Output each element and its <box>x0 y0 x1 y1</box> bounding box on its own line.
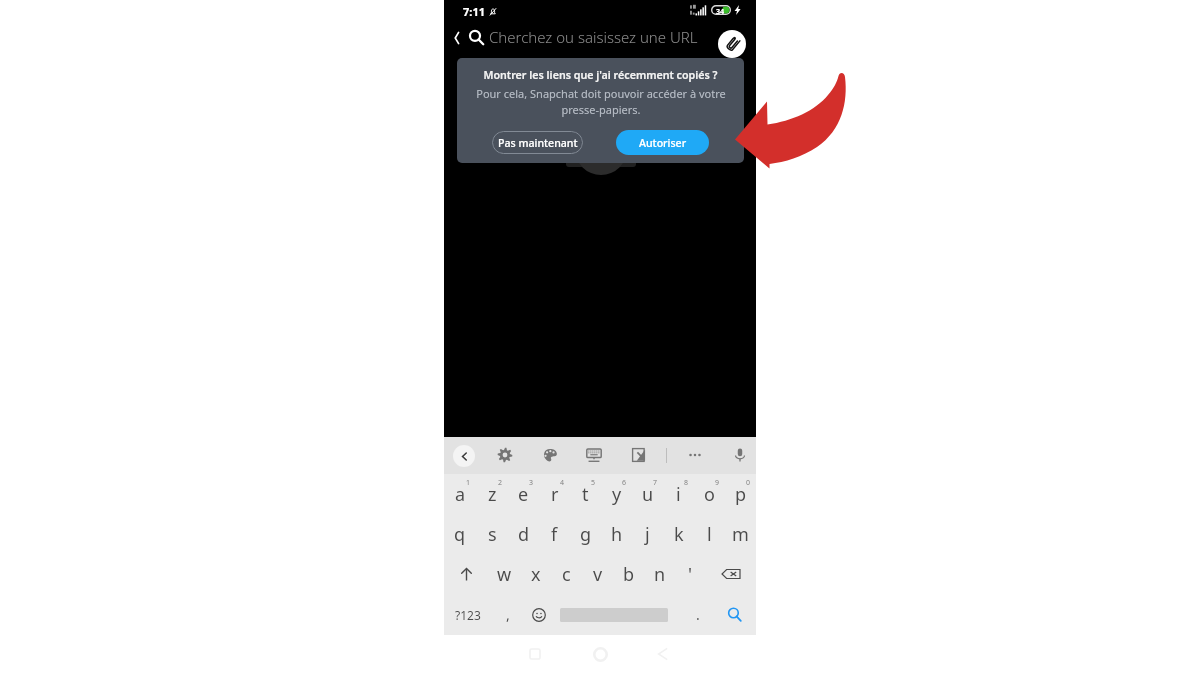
staticText: w <box>497 562 512 587</box>
button[interactable]: Theme <box>539 444 561 466</box>
staticText: 34 <box>716 6 725 16</box>
staticText: Pas maintenant <box>498 136 578 150</box>
staticText: f <box>551 522 558 547</box>
button[interactable]: l <box>694 514 725 554</box>
button[interactable]: k <box>663 514 694 554</box>
button[interactable]: Attach <box>718 30 746 58</box>
button[interactable]: j <box>632 514 663 554</box>
staticText: s <box>488 522 497 547</box>
button[interactable]: a <box>444 474 476 514</box>
staticText: Autoriser <box>639 136 687 150</box>
staticText: l <box>707 522 712 547</box>
button[interactable]: Keyboard <box>583 444 605 466</box>
staticText: a <box>455 482 466 507</box>
button[interactable]: q <box>444 514 476 554</box>
staticText: o <box>704 482 715 507</box>
button[interactable]: h <box>601 514 632 554</box>
button[interactable]: v <box>582 554 613 594</box>
button[interactable]: n <box>644 554 675 594</box>
staticText: 2 <box>498 478 503 488</box>
staticText: 1 <box>466 478 471 488</box>
button[interactable]: , <box>492 594 523 635</box>
button[interactable]: Back <box>453 445 475 467</box>
staticText: y <box>612 482 622 507</box>
button[interactable]: Backspace <box>706 554 756 594</box>
button[interactable]: e <box>508 474 539 514</box>
button[interactable]: Emoji <box>523 594 554 635</box>
button[interactable]: i <box>663 474 694 514</box>
button[interactable]: o <box>694 474 725 514</box>
button[interactable]: c <box>551 554 582 594</box>
staticText: z <box>488 482 497 507</box>
button[interactable]: Home <box>588 642 612 666</box>
button[interactable]: Recents <box>523 642 547 666</box>
button[interactable]: d <box>508 514 539 554</box>
staticText: i <box>676 482 681 507</box>
staticText: q <box>454 522 466 547</box>
button[interactable]: Autoriser <box>616 130 709 155</box>
button[interactable]: Voice <box>729 444 751 466</box>
staticText: m <box>732 522 749 547</box>
staticText: 9 <box>715 478 720 488</box>
staticText: 6 <box>622 478 627 488</box>
staticText: ?123 <box>455 607 481 623</box>
staticText: 0 <box>746 478 751 488</box>
button[interactable]: t <box>570 474 601 514</box>
staticText: Pour cela, Snapchat doit pouvoir accéder… <box>475 86 727 117</box>
button[interactable]: r <box>539 474 570 514</box>
staticText: 3 <box>529 478 534 488</box>
button[interactable]: Search <box>466 27 486 47</box>
button[interactable]: u <box>632 474 663 514</box>
staticText: r <box>551 482 559 507</box>
button[interactable]: Search <box>713 594 756 635</box>
staticText: 7:11 <box>463 4 485 19</box>
button[interactable]: m <box>725 514 756 554</box>
staticText: 8 <box>684 478 689 488</box>
button[interactable]: s <box>476 514 508 554</box>
staticText: h <box>611 522 623 547</box>
button[interactable]: b <box>613 554 644 594</box>
staticText: e <box>518 482 529 507</box>
button[interactable]: p <box>725 474 756 514</box>
staticText: u <box>642 482 654 507</box>
button[interactable]: Shift <box>444 554 489 594</box>
staticText: c <box>562 562 571 587</box>
staticText: g <box>580 522 592 547</box>
button[interactable]: z <box>476 474 508 514</box>
staticText: p <box>735 482 747 507</box>
button[interactable]: ' <box>675 554 706 594</box>
staticText: . <box>696 605 700 624</box>
staticText: t <box>582 482 589 507</box>
staticText: x <box>531 562 541 587</box>
staticText: j <box>645 522 650 547</box>
staticText: , <box>506 605 510 624</box>
button[interactable]: f <box>539 514 570 554</box>
staticText: b <box>623 562 635 587</box>
button[interactable]: Back <box>447 28 467 48</box>
button[interactable]: g <box>570 514 601 554</box>
button[interactable]: More <box>684 444 706 466</box>
button[interactable]: Pas maintenant <box>492 131 583 154</box>
staticText: k <box>674 522 684 547</box>
staticText: d <box>518 522 530 547</box>
staticText: 7 <box>653 478 658 488</box>
button[interactable]: Resize <box>628 444 650 466</box>
button[interactable]: w <box>489 554 520 594</box>
button[interactable]: ?123 <box>444 594 492 635</box>
staticText: 5 <box>591 478 596 488</box>
button[interactable]: y <box>601 474 632 514</box>
staticText: Montrer les liens que j'ai récemment cop… <box>483 68 718 83</box>
staticText: Cherchez ou saisissez une URL <box>489 27 698 47</box>
staticText: ' <box>688 562 693 587</box>
button[interactable]: Settings <box>494 444 516 466</box>
staticText: 4 <box>560 478 565 488</box>
button[interactable]: Space <box>554 594 682 635</box>
staticText: v <box>593 562 603 587</box>
button[interactable]: . <box>682 594 713 635</box>
staticText: n <box>654 562 666 587</box>
button[interactable]: x <box>520 554 551 594</box>
